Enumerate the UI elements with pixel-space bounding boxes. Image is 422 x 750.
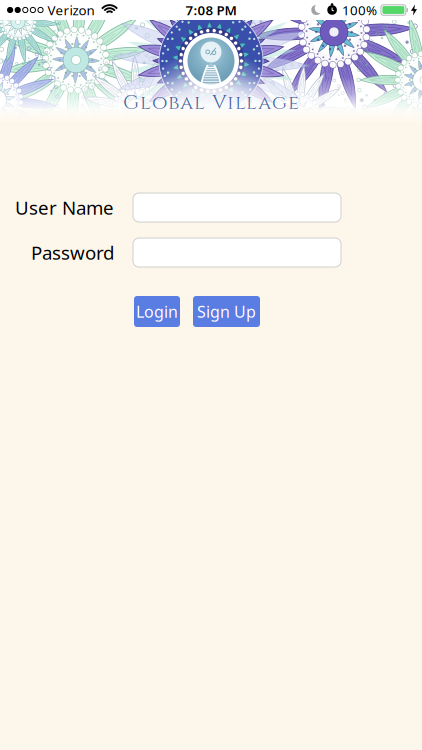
staticText: Sign Up [197, 301, 256, 322]
staticText: Login [136, 301, 178, 322]
staticText: Verizon [48, 1, 95, 19]
button[interactable]: User Name [133, 193, 341, 222]
staticText: User Name [15, 195, 114, 220]
staticText: Global Village [123, 89, 299, 116]
staticText: 100% [342, 1, 377, 19]
staticText: 7:08 PM [185, 1, 236, 19]
button[interactable]: Password [133, 238, 341, 267]
staticText: Password [31, 240, 114, 265]
button[interactable]: Sign Up [193, 296, 260, 327]
button[interactable]: Login [134, 296, 180, 327]
